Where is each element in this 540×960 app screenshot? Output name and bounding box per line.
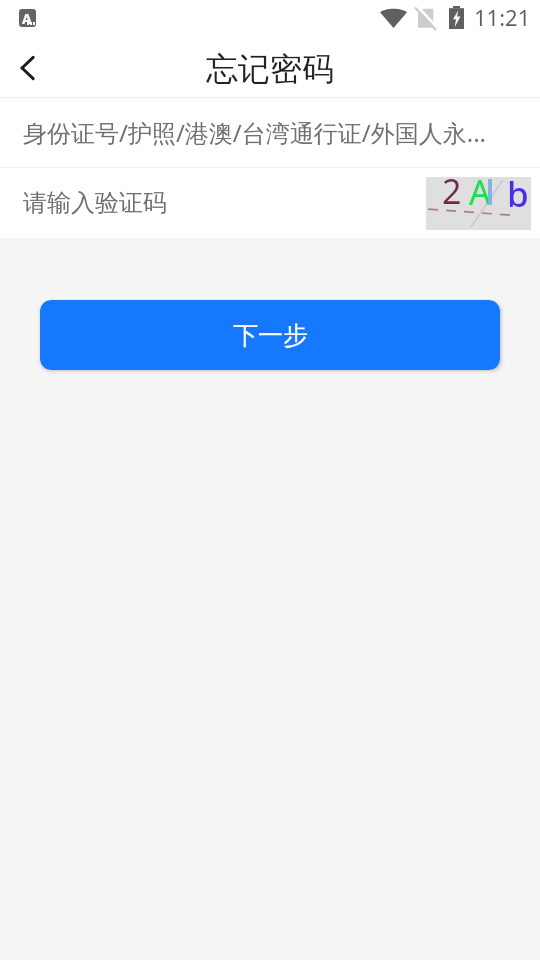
staticText: 身份证号/护照/港澳/台湾通行证/外国人永... [23,116,487,149]
button[interactable]: 身份证号/护照/港澳/台湾通行证/外国人永... [0,98,540,167]
staticText: 忘记密码 [206,49,334,89]
staticText: 下一步 [233,320,308,351]
staticText: A [469,169,491,215]
staticText: b [507,170,529,218]
button[interactable]: Refresh captcha [426,177,531,230]
button[interactable]: 请输入验证码 [0,168,410,238]
staticText: 11:21 [474,2,531,32]
staticText: 2 [442,168,462,214]
button[interactable]: 下一步 [40,300,500,370]
staticText: 请输入验证码 [23,188,167,218]
staticText: A [22,9,32,27]
button[interactable]: Back [0,40,56,96]
